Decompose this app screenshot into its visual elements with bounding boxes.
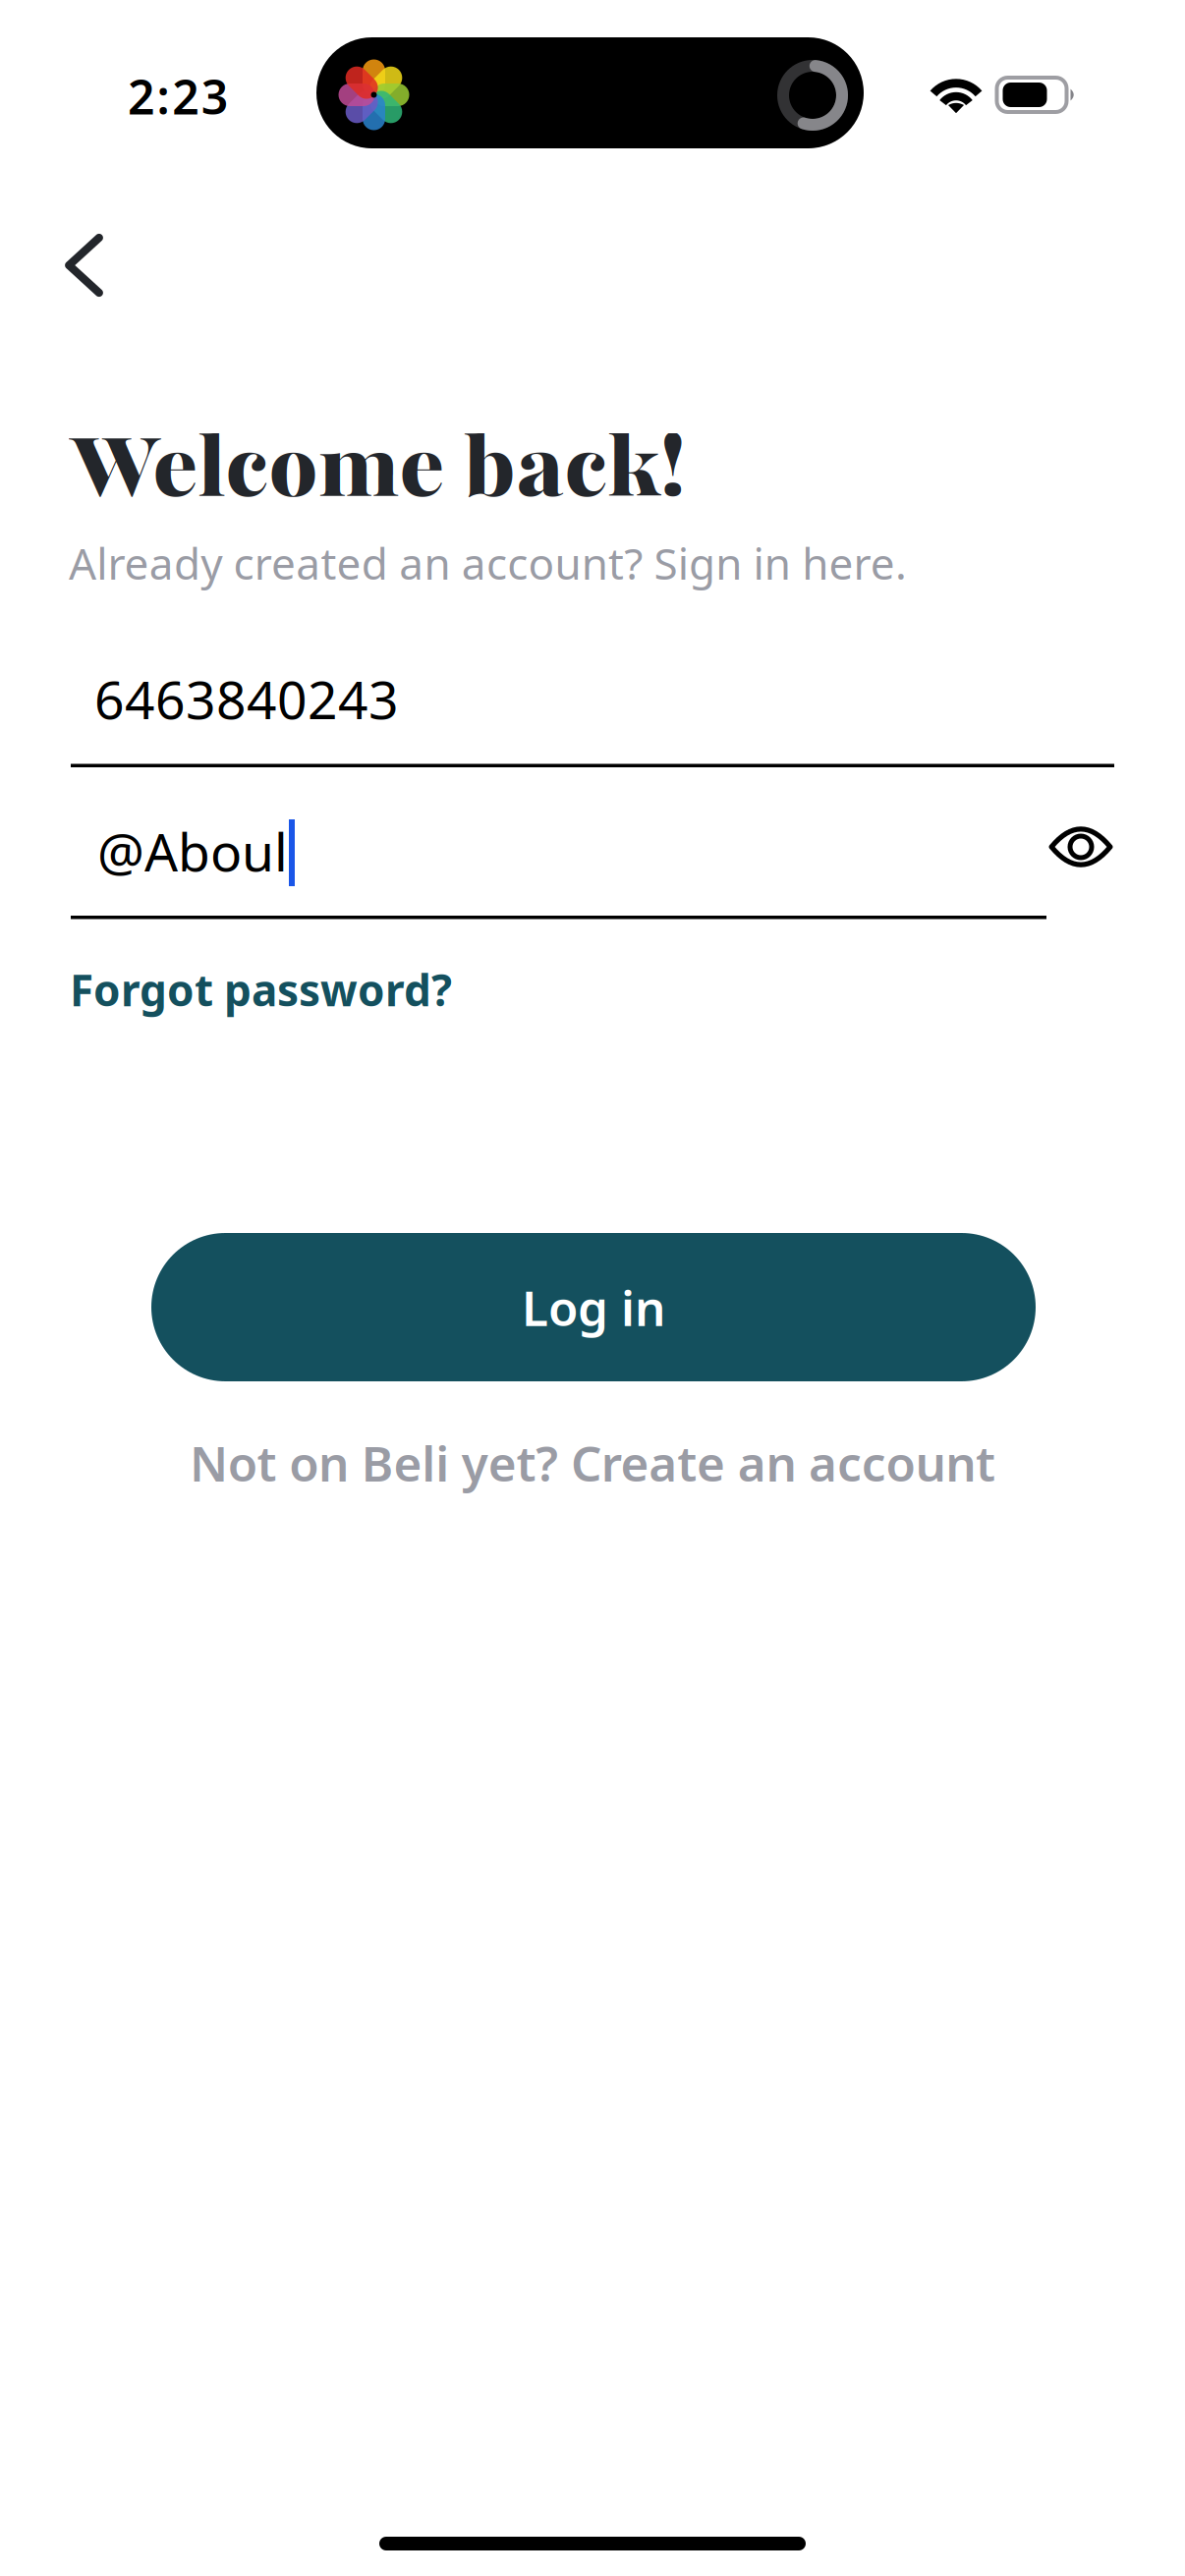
button[interactable]: Show password (1027, 800, 1135, 894)
button[interactable]: Not on Beli yet? Create an account (185, 1430, 1000, 1495)
staticText: Log in (522, 1275, 665, 1339)
staticText: Already created an account? Sign in here… (69, 534, 907, 591)
staticText: Not on Beli yet? Create an account (190, 1430, 995, 1495)
staticText: Welcome back! (69, 408, 686, 527)
button[interactable]: @Aboul (71, 816, 1046, 919)
button[interactable]: Back (38, 217, 133, 313)
staticText: Forgot password? (70, 961, 452, 1018)
button[interactable]: Log in (151, 1233, 1036, 1381)
staticText: 6463840243 (94, 664, 399, 734)
button[interactable]: Forgot password? (70, 961, 452, 1018)
staticText: @Aboul (97, 816, 288, 886)
button[interactable]: 6463840243 (71, 664, 1114, 767)
staticText: 2:23 (128, 65, 228, 127)
